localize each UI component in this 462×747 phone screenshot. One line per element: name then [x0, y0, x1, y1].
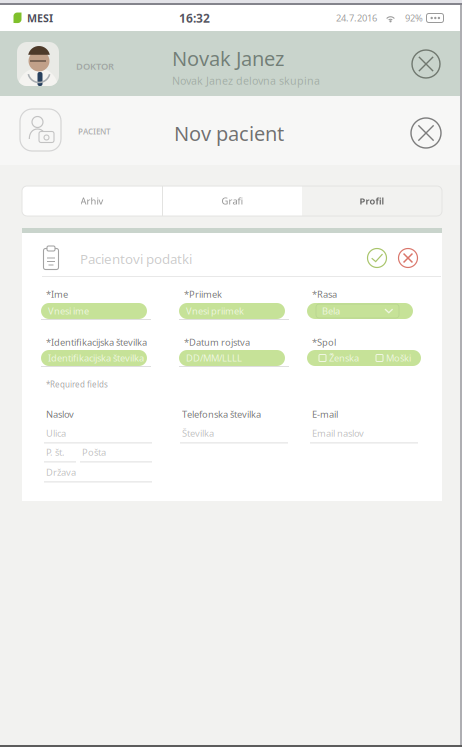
staticText: Arhiv	[80, 195, 103, 207]
staticText: *Ime	[46, 288, 68, 300]
button[interactable]: Cancel	[395, 245, 421, 271]
button[interactable]: Close patient	[404, 111, 448, 155]
button[interactable]: Email naslov	[310, 427, 418, 443]
button[interactable]: Identifikacijska številka	[41, 350, 147, 366]
staticText: *Datum rojstva	[184, 336, 250, 348]
staticText: Novak Janez	[172, 45, 284, 72]
button[interactable]: Close doctor	[404, 42, 448, 86]
staticText: 24.7.2016	[336, 12, 377, 24]
staticText: Naslov	[46, 408, 74, 420]
staticText: Novak Janez delovna skupina	[172, 74, 320, 88]
staticText: P. št.	[46, 446, 65, 458]
button[interactable]: Profil	[302, 186, 442, 216]
staticText: Vnesi priimek	[186, 305, 244, 317]
staticText: Identifikacijska številka	[48, 352, 144, 364]
staticText: PACIENT	[78, 126, 111, 137]
staticText: 92%	[405, 12, 423, 24]
button[interactable]: Pošta	[80, 446, 152, 462]
staticText: MESI	[27, 11, 53, 25]
staticText: Moški	[386, 352, 411, 364]
button[interactable]: Moški	[376, 350, 411, 366]
staticText: Bela	[322, 305, 340, 317]
staticText: Pacientovi podatki	[80, 250, 192, 268]
button[interactable]: Arhiv	[22, 186, 162, 216]
button[interactable]: Ženska	[319, 350, 359, 366]
button[interactable]: Vnesi ime	[41, 303, 147, 319]
button[interactable]: P. št.	[44, 446, 76, 462]
staticText: DD/MM/LLLL	[186, 352, 242, 364]
staticText: Ulica	[46, 427, 66, 439]
staticText: *Identifikacijska številka	[46, 336, 147, 348]
staticText: *Required fields	[46, 379, 108, 390]
staticText: Profil	[359, 195, 384, 207]
staticText: Vnesi ime	[48, 305, 89, 317]
staticText: Država	[46, 466, 76, 478]
button[interactable]: Ulica	[44, 427, 152, 443]
button[interactable]: Vnesi priimek	[179, 303, 285, 319]
staticText: *Spol	[312, 336, 336, 348]
staticText: 16:32	[179, 10, 210, 26]
button[interactable]: Grafi	[163, 186, 302, 216]
staticText: DOKTOR	[76, 60, 114, 72]
staticText: Grafi	[221, 195, 243, 207]
button[interactable]: DD/MM/LLLL	[179, 350, 285, 366]
staticText: Email naslov	[312, 427, 364, 439]
staticText: *Rasa	[312, 288, 337, 300]
button[interactable]: Confirm	[364, 245, 390, 271]
staticText: Ženska	[329, 352, 359, 364]
staticText: Pošta	[82, 446, 106, 458]
button[interactable]: Rasa	[307, 303, 413, 319]
staticText: Nov pacient	[174, 120, 284, 147]
staticText: Številka	[182, 427, 214, 439]
button[interactable]: Številka	[180, 427, 288, 443]
staticText: Telefonska številka	[182, 408, 261, 420]
staticText: E-mail	[312, 408, 338, 420]
staticText: *Priimek	[184, 288, 222, 300]
button[interactable]: Država	[44, 466, 152, 482]
